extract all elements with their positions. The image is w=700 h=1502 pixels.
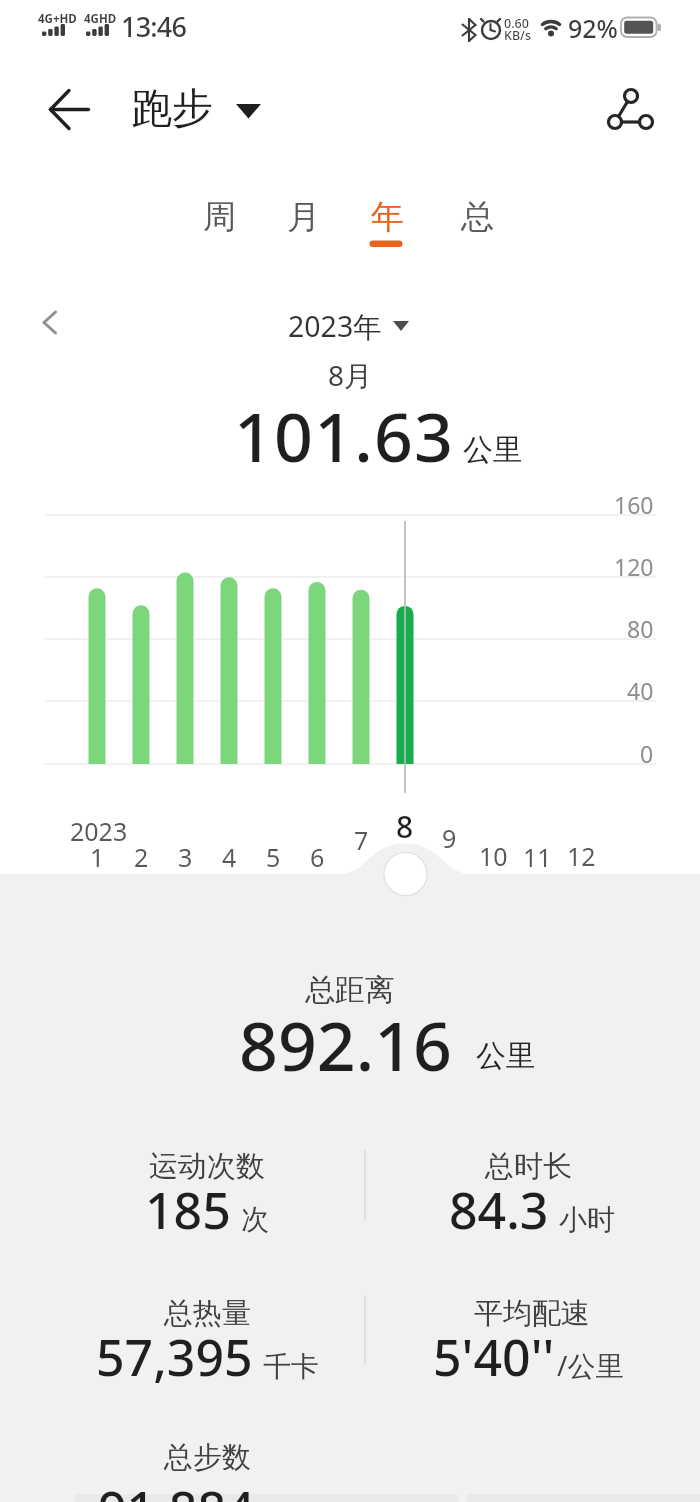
button[interactable]: 年 — [371, 196, 404, 238]
staticText: 小时 — [559, 1202, 615, 1237]
button[interactable] — [382, 850, 430, 898]
staticText: 0.60 — [504, 15, 529, 32]
staticText: 185 — [145, 1176, 231, 1244]
button[interactable] — [34, 302, 74, 348]
staticText: 总时长 — [485, 1148, 572, 1185]
staticText: 6 — [310, 840, 325, 874]
staticText: 0 — [640, 738, 654, 769]
staticText: 公里 — [476, 1037, 536, 1075]
staticText: 8月 — [328, 356, 373, 394]
staticText: 3 — [178, 840, 193, 874]
staticText: 101.63 — [234, 389, 455, 482]
staticText: 84.3 — [449, 1176, 549, 1244]
staticText: 13:46 — [121, 8, 187, 45]
staticText: 4GHD — [84, 11, 117, 27]
staticText: 120 — [614, 551, 654, 582]
staticText: 9 — [442, 821, 457, 855]
button[interactable]: 跑步 — [131, 83, 213, 135]
staticText: 1 — [90, 840, 105, 874]
staticText: 160 — [614, 489, 654, 520]
staticText: 平均配速 — [474, 1295, 590, 1332]
staticText: 40 — [627, 675, 654, 706]
staticText: 91,884 — [98, 1475, 255, 1502]
staticText: 892.16 — [239, 998, 452, 1091]
staticText: 2023 — [70, 814, 128, 848]
button[interactable]: 月 — [287, 196, 320, 238]
staticText: 5 — [266, 840, 281, 874]
staticText: 运动次数 — [149, 1148, 265, 1185]
staticText: 8 — [396, 806, 414, 847]
staticText: 57,395 — [96, 1323, 253, 1391]
staticText: 10 — [479, 839, 508, 873]
staticText: 次 — [241, 1202, 269, 1237]
staticText: 5'40'' — [433, 1323, 555, 1391]
staticText: /公里 — [557, 1346, 624, 1384]
staticText: 92% — [568, 11, 618, 45]
staticText: 80 — [627, 613, 654, 644]
staticText: 2 — [134, 840, 149, 874]
button[interactable]: 2023年 — [288, 307, 382, 346]
staticText: 总步数 — [164, 1439, 251, 1476]
staticText: 总热量 — [164, 1295, 251, 1332]
staticText: 公里 — [463, 431, 523, 469]
staticText: 总距离 — [305, 971, 395, 1009]
staticText: 4G+HD — [38, 11, 77, 27]
staticText: 4 — [222, 840, 237, 874]
button[interactable]: 周 — [203, 196, 236, 238]
staticText: KB/s — [504, 27, 531, 44]
button[interactable] — [40, 82, 110, 134]
staticText: 千卡 — [263, 1349, 319, 1384]
staticText: 12 — [567, 839, 596, 873]
staticText: 7 — [354, 823, 369, 857]
staticText: 11 — [523, 840, 552, 874]
button[interactable]: 总 — [461, 196, 494, 238]
button[interactable] — [600, 80, 664, 140]
